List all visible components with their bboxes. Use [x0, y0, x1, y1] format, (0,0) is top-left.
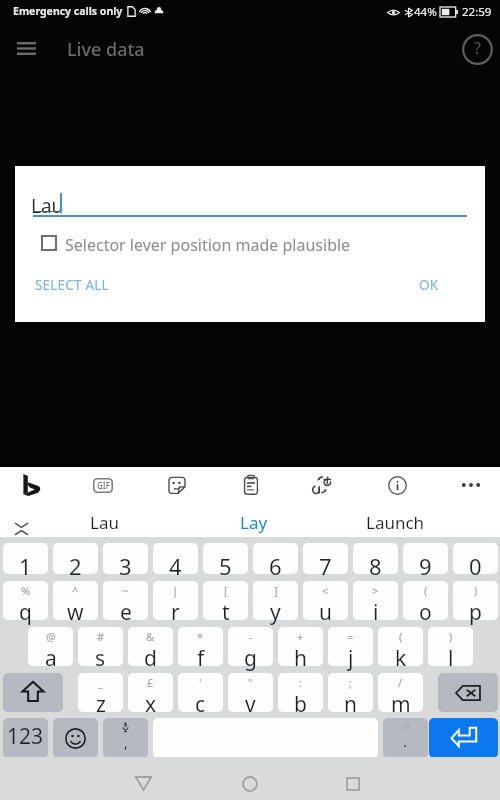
staticText: Launch	[366, 511, 425, 534]
staticText: Live data	[67, 37, 145, 62]
staticText: @	[46, 629, 56, 644]
button[interactable]	[403, 543, 448, 574]
button[interactable]	[328, 627, 373, 666]
button[interactable]	[378, 627, 423, 666]
staticText: 123	[7, 722, 44, 751]
staticText: Emergency calls only	[13, 4, 123, 18]
button[interactable]	[3, 718, 48, 758]
button[interactable]	[153, 543, 198, 574]
button[interactable]	[428, 627, 473, 666]
button[interactable]: Enter	[429, 718, 498, 758]
button[interactable]: Voice input	[103, 718, 148, 758]
button[interactable]: SELECT ALL	[35, 267, 109, 303]
button[interactable]: Home	[230, 762, 270, 800]
button[interactable]	[453, 581, 498, 620]
staticText: 6	[269, 551, 282, 581]
staticText: /	[398, 675, 403, 690]
staticText: ;	[349, 675, 352, 690]
button[interactable]	[128, 627, 173, 666]
button[interactable]	[3, 581, 48, 620]
staticText: f	[197, 644, 205, 673]
staticText: _	[98, 675, 103, 690]
button[interactable]: Recent apps	[333, 762, 373, 800]
button[interactable]	[3, 543, 48, 574]
button[interactable]: More options	[450, 462, 492, 508]
button[interactable]	[353, 581, 398, 620]
button[interactable]	[228, 627, 273, 666]
button[interactable]: GIF	[82, 462, 124, 508]
button[interactable]: Stickers	[156, 462, 198, 508]
button[interactable]: Backspace	[438, 673, 498, 712]
button[interactable]	[403, 581, 448, 620]
staticText: n	[344, 690, 357, 719]
staticText: ?	[474, 37, 481, 59]
button[interactable]: OK	[419, 267, 439, 303]
button[interactable]	[53, 543, 98, 574]
staticText: ~	[122, 583, 129, 598]
button[interactable]: Launch	[330, 507, 460, 537]
button[interactable]: Shift	[3, 673, 63, 712]
staticText: &	[146, 629, 155, 644]
button[interactable]	[203, 543, 248, 574]
staticText: #	[97, 629, 105, 644]
staticText: t	[222, 598, 230, 627]
staticText: l	[448, 644, 454, 673]
staticText: "	[248, 675, 253, 690]
staticText: 8	[369, 551, 382, 581]
staticText: .	[403, 731, 408, 751]
staticText: b	[294, 690, 307, 719]
button[interactable]	[303, 543, 348, 574]
staticText: 44%	[414, 4, 437, 20]
button[interactable]: Lau	[40, 507, 168, 537]
button[interactable]	[278, 673, 323, 712]
button[interactable]	[328, 673, 373, 712]
staticText: 22:59	[462, 4, 492, 20]
button[interactable]	[28, 627, 73, 666]
button[interactable]	[178, 673, 223, 712]
button[interactable]: Bing search	[9, 462, 51, 508]
button[interactable]: Space	[153, 718, 378, 758]
button[interactable]: Period	[383, 718, 428, 758]
button[interactable]: Menu	[8, 30, 44, 66]
button[interactable]	[78, 673, 123, 712]
button[interactable]	[153, 581, 198, 620]
button[interactable]	[78, 627, 123, 666]
staticText: (	[399, 629, 403, 644]
staticText: j	[348, 644, 354, 673]
staticText: SELECT ALL	[35, 276, 109, 294]
staticText: (	[424, 583, 428, 598]
staticText: >	[372, 583, 379, 598]
staticText: )	[449, 629, 453, 644]
button[interactable]	[128, 673, 173, 712]
button[interactable]	[178, 627, 223, 666]
staticText: '	[199, 675, 202, 690]
button[interactable]: Help	[459, 31, 495, 67]
button[interactable]	[203, 581, 248, 620]
button[interactable]: Collapse suggestions	[6, 513, 36, 543]
button[interactable]: Emoji	[53, 718, 98, 758]
staticText: |	[172, 583, 179, 598]
button[interactable]	[53, 581, 98, 620]
button[interactable]	[228, 673, 273, 712]
staticText: w	[67, 598, 84, 627]
staticText: o	[419, 598, 432, 627]
staticText: Lay	[240, 511, 268, 534]
button[interactable]	[278, 627, 323, 666]
button[interactable]	[378, 673, 423, 712]
button[interactable]	[253, 543, 298, 574]
button[interactable]	[103, 581, 148, 620]
staticText: i	[373, 598, 379, 627]
button[interactable]	[253, 581, 298, 620]
button[interactable]: Back	[123, 762, 163, 800]
button[interactable]: Clipboard	[230, 462, 272, 508]
staticText: %	[21, 583, 31, 598]
button[interactable]	[303, 581, 348, 620]
button[interactable]: Translate	[301, 462, 343, 508]
button[interactable]	[353, 543, 398, 574]
button[interactable]: Lay	[178, 507, 330, 537]
staticText: y	[270, 598, 281, 627]
button[interactable]: Info	[376, 462, 418, 508]
button[interactable]	[453, 543, 498, 574]
staticText: s	[95, 644, 106, 673]
button[interactable]	[103, 543, 148, 574]
